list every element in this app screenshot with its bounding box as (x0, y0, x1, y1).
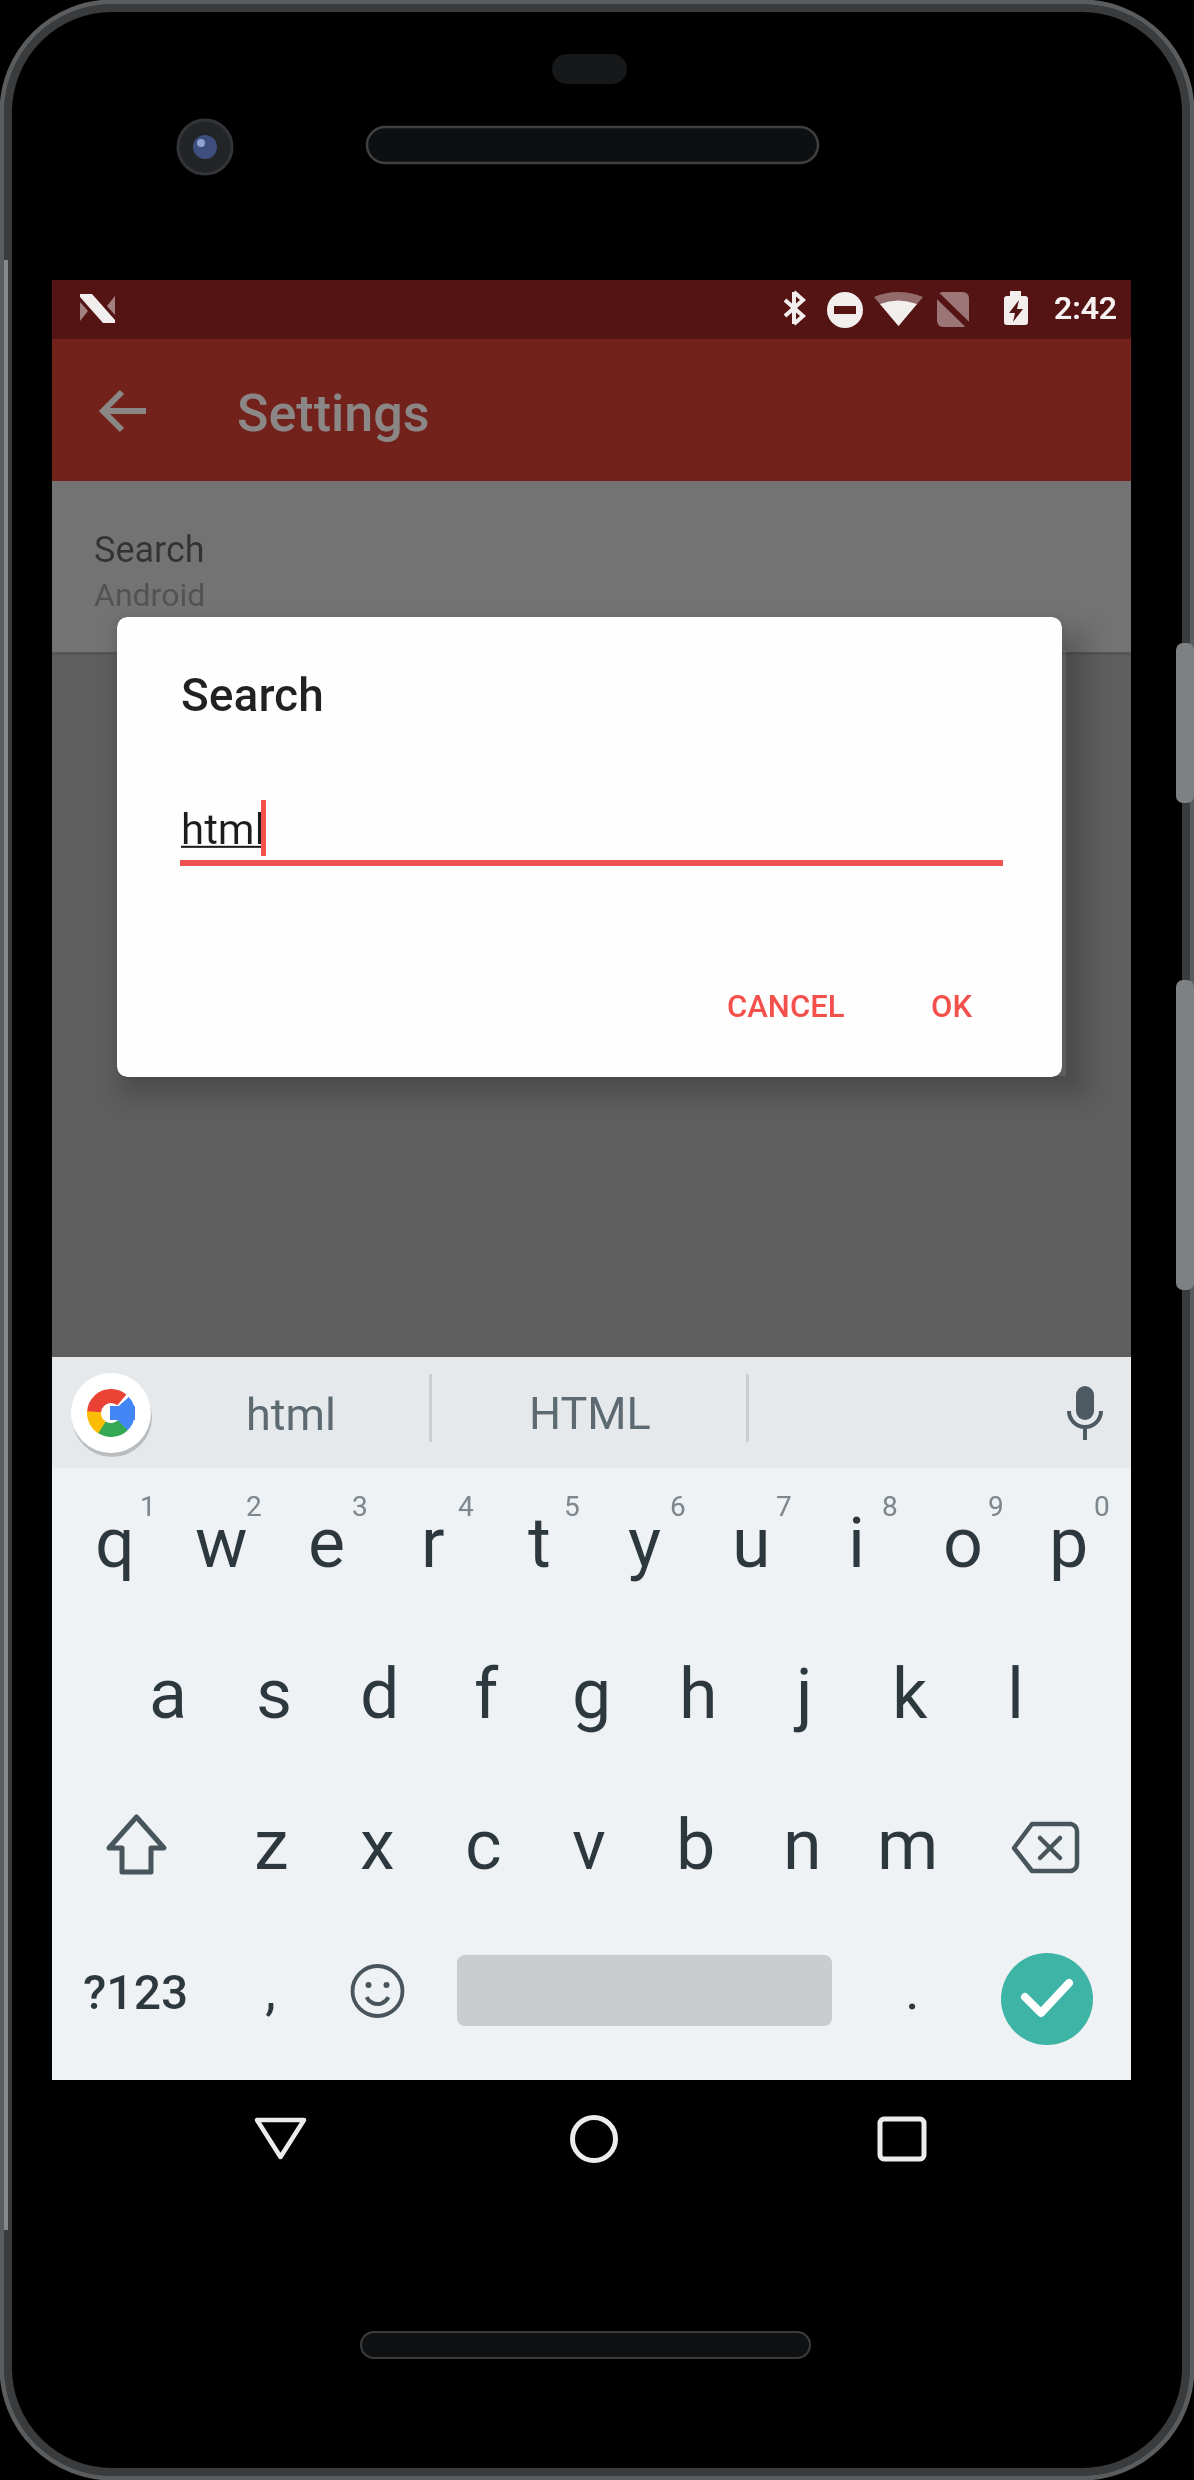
staticText: f (474, 1653, 499, 1735)
button[interactable]: t (469, 1488, 609, 1598)
staticText: a (149, 1653, 188, 1735)
staticText: e (308, 1502, 346, 1584)
button[interactable]: j (734, 1639, 874, 1749)
staticText: m (877, 1804, 939, 1886)
staticText: c (465, 1804, 502, 1886)
button[interactable]: HTML (529, 1387, 651, 1440)
staticText: ?123 (83, 1964, 189, 2020)
staticText: 6 (670, 1490, 686, 1523)
button[interactable]: k (840, 1639, 980, 1749)
staticText: q (95, 1502, 135, 1584)
button[interactable]: html (246, 1388, 336, 1441)
staticText: i (848, 1502, 866, 1584)
staticText: s (256, 1653, 293, 1735)
staticText: Search (181, 668, 324, 722)
button[interactable]: p (999, 1488, 1139, 1598)
staticText: 8 (882, 1490, 898, 1523)
staticText: 1 (140, 1490, 156, 1523)
staticText: Search (94, 529, 205, 571)
button[interactable]: d (310, 1639, 450, 1749)
button[interactable]: q (45, 1488, 185, 1598)
button[interactable]: b (626, 1790, 766, 1900)
button[interactable] (1001, 1953, 1093, 2045)
staticText: o (943, 1502, 983, 1584)
button[interactable]: , (201, 1935, 341, 2045)
staticText: p (1049, 1502, 1089, 1584)
button[interactable]: l (946, 1639, 1086, 1749)
staticText: html (181, 805, 265, 854)
button[interactable]: z (201, 1790, 341, 1900)
button[interactable] (852, 2085, 948, 2181)
button[interactable]: u (681, 1488, 821, 1598)
staticText: g (572, 1653, 612, 1735)
button[interactable]: i (787, 1488, 927, 1598)
staticText: t (528, 1502, 551, 1584)
button[interactable] (52, 481, 1131, 652)
staticText: b (676, 1804, 716, 1886)
staticText: u (732, 1502, 771, 1584)
staticText: 2:42 (1054, 289, 1118, 327)
button[interactable]: x (307, 1790, 447, 1900)
staticText: v (572, 1804, 606, 1886)
staticText: 5 (564, 1490, 580, 1523)
staticText: d (360, 1653, 400, 1735)
button[interactable]: CANCEL (727, 988, 845, 1024)
button[interactable] (84, 385, 164, 445)
button[interactable]: y (575, 1488, 715, 1598)
button[interactable] (546, 2085, 642, 2181)
staticText: 9 (988, 1490, 1004, 1523)
button[interactable]: . (842, 1935, 982, 2045)
button[interactable]: m (838, 1790, 978, 1900)
button[interactable] (340, 1954, 416, 2030)
staticText: . (905, 1957, 920, 2023)
button[interactable] (235, 2095, 331, 2185)
staticText: r (421, 1502, 445, 1584)
staticText: 4 (458, 1490, 474, 1523)
staticText: z (254, 1804, 289, 1886)
button[interactable]: h (628, 1639, 768, 1749)
staticText: y (628, 1502, 662, 1584)
button[interactable]: w (151, 1488, 291, 1598)
staticText: x (360, 1804, 395, 1886)
staticText: j (796, 1653, 813, 1735)
button[interactable] (990, 1800, 1102, 1896)
staticText: , (265, 1957, 277, 2023)
button[interactable]: ?123 (66, 1937, 206, 2047)
staticText: w (195, 1502, 248, 1584)
button[interactable] (1055, 1380, 1119, 1452)
button[interactable] (85, 1800, 185, 1896)
button[interactable] (70, 1373, 152, 1455)
staticText: n (783, 1804, 822, 1886)
staticText: h (679, 1653, 718, 1735)
button[interactable]: n (732, 1790, 872, 1900)
button[interactable]: e (257, 1488, 397, 1598)
button[interactable]: g (522, 1639, 662, 1749)
staticText: 7 (776, 1490, 792, 1523)
staticText: k (892, 1653, 928, 1735)
button[interactable]: f (416, 1639, 556, 1749)
button[interactable]: OK (931, 988, 972, 1024)
button[interactable]: s (204, 1639, 344, 1749)
button[interactable]: a (98, 1639, 238, 1749)
button[interactable]: o (893, 1488, 1033, 1598)
button[interactable]: v (519, 1790, 659, 1900)
staticText: 3 (352, 1490, 368, 1523)
button[interactable]: r (363, 1488, 503, 1598)
staticText: 0 (1094, 1490, 1110, 1523)
staticText: Settings (237, 383, 430, 444)
staticText: Android (94, 576, 206, 614)
staticText: l (1007, 1653, 1025, 1735)
button[interactable]: c (413, 1790, 553, 1900)
staticText: 2 (246, 1490, 262, 1523)
